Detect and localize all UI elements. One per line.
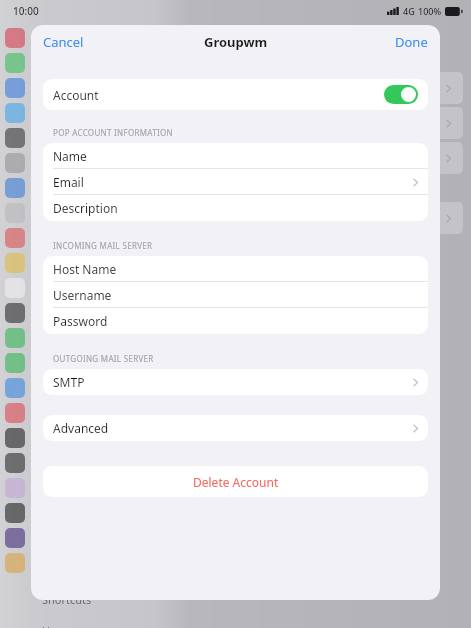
staticText: Advanced (53, 420, 109, 436)
staticText: OUTGOING MAIL SERVER (53, 353, 154, 364)
button[interactable]: Username (43, 282, 428, 308)
button[interactable]: Cancel (31, 26, 96, 58)
staticText: SMTP (53, 374, 85, 390)
staticText: Delete Account (193, 474, 279, 490)
staticText: Description (53, 200, 118, 216)
staticText: 4G (403, 5, 415, 17)
button[interactable]: Delete Account (43, 466, 428, 497)
staticText: Email (53, 174, 84, 190)
button[interactable]: Password (43, 308, 428, 334)
staticText: INCOMING MAIL SERVER (53, 240, 153, 251)
staticText: Username (53, 287, 112, 303)
button[interactable]: SMTP (43, 369, 428, 395)
button[interactable]: Done (383, 26, 440, 58)
staticText: Done (395, 33, 428, 51)
staticText: Name (53, 148, 87, 164)
button[interactable]: Account enabled (384, 85, 418, 104)
staticText: 100% (418, 5, 442, 17)
staticText: POP ACCOUNT INFORMATION (53, 127, 173, 138)
button[interactable]: Email (43, 169, 428, 195)
staticText: Host Name (53, 261, 117, 277)
staticText: Home (42, 623, 74, 628)
button[interactable]: Name (43, 143, 428, 169)
staticText: 10:00 (13, 4, 39, 18)
staticText: Cancel (43, 33, 84, 51)
button[interactable]: Account (43, 79, 428, 110)
staticText: Groupwm (204, 33, 268, 51)
staticText: Password (53, 313, 108, 329)
staticText: Shortcuts (42, 592, 92, 607)
button[interactable]: Description (43, 195, 428, 221)
button[interactable]: Advanced (43, 415, 428, 441)
staticText: Account (53, 87, 99, 103)
button[interactable]: Host Name (43, 256, 428, 282)
